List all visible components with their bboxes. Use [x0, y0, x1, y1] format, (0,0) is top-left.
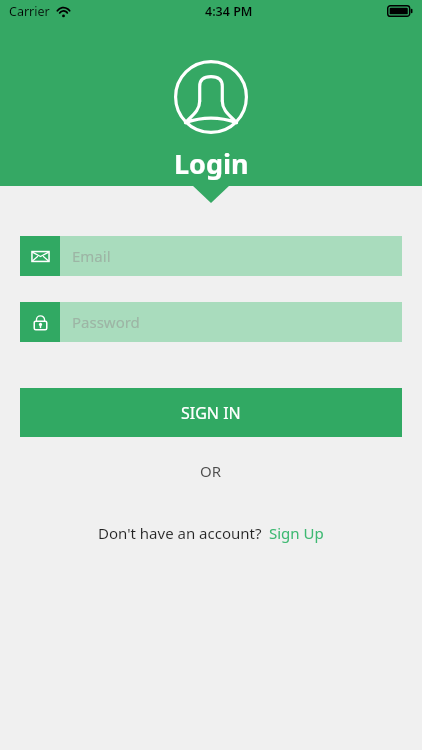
- staticText: OR: [200, 461, 222, 481]
- other: Password: [20, 302, 60, 342]
- staticText: Email: [72, 246, 111, 266]
- staticText: Don't have an account?: [98, 523, 262, 543]
- button[interactable]: Password: [20, 302, 402, 342]
- other: Battery: [387, 5, 413, 17]
- other: Email: [20, 236, 60, 276]
- button[interactable]: Email: [20, 236, 402, 276]
- staticText: 4:34 PM: [205, 3, 253, 20]
- staticText: Login: [174, 145, 249, 182]
- other: Profile avatar: [174, 60, 248, 134]
- staticText: SIGN IN: [181, 402, 241, 424]
- button[interactable]: Sign Up: [262, 523, 324, 543]
- staticText: Carrier: [9, 3, 50, 20]
- staticText: Password: [72, 312, 140, 332]
- staticText: Sign Up: [269, 523, 324, 543]
- other: Wi-Fi: [56, 6, 71, 17]
- button[interactable]: SIGN IN: [20, 388, 402, 437]
